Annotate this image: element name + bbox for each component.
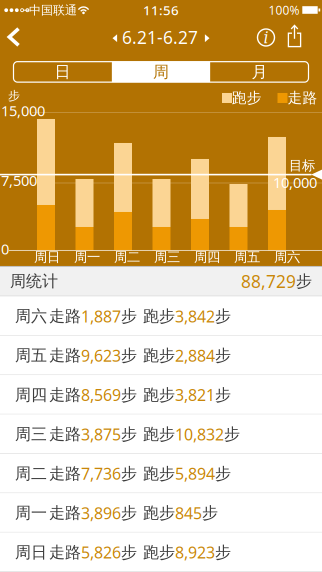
staticText: 走路: [49, 464, 81, 483]
staticText: 跑步: [232, 89, 262, 107]
button[interactable]: 周三: [0, 415, 322, 454]
staticText: 5,894: [175, 463, 215, 484]
button[interactable]: 周: [112, 62, 210, 82]
staticText: 步: [296, 271, 312, 291]
staticText: 走路: [49, 424, 81, 444]
button[interactable]: 返回: [5, 26, 21, 48]
button[interactable]: 月: [211, 62, 308, 82]
staticText: 3,896: [81, 502, 121, 523]
staticText: 3,821: [175, 384, 215, 405]
staticText: 周统计: [10, 271, 58, 291]
staticText: 周六: [274, 249, 300, 265]
staticText: 周五: [15, 346, 47, 365]
staticText: 8,923: [175, 542, 215, 563]
staticText: 8,569: [81, 384, 121, 405]
staticText: 周二: [15, 464, 47, 483]
staticText: 跑步: [143, 464, 175, 483]
staticText: 目标: [289, 157, 315, 174]
staticText: 11:56: [143, 1, 179, 19]
button[interactable]: 周二: [0, 454, 322, 493]
button[interactable]: 下一周: [205, 34, 210, 42]
staticText: i: [263, 28, 268, 47]
staticText: 2,884: [175, 345, 215, 366]
staticText: 7,736: [81, 463, 121, 484]
staticText: 跑步: [143, 424, 175, 444]
staticText: 步: [121, 385, 137, 405]
button[interactable]: 周日: [0, 533, 322, 572]
staticText: 走路: [49, 503, 81, 523]
staticText: 周三: [15, 424, 47, 444]
staticText: 步: [121, 503, 137, 523]
staticText: 周日: [15, 542, 47, 562]
staticText: 跑步: [143, 542, 175, 562]
staticText: 周二: [114, 249, 140, 265]
staticText: 走路: [49, 306, 81, 326]
staticText: 跑步: [143, 346, 175, 365]
staticText: 步: [215, 385, 231, 405]
staticText: 步: [215, 346, 231, 365]
staticText: 周五: [234, 249, 260, 265]
staticText: 中国联通: [29, 3, 77, 17]
staticText: 日: [55, 62, 71, 82]
button[interactable]: 周五: [0, 336, 322, 375]
staticText: 9,623: [81, 345, 121, 366]
staticText: 5,826: [81, 542, 121, 563]
staticText: 周六: [15, 306, 47, 326]
staticText: 1,887: [81, 305, 121, 327]
button[interactable]: 日: [14, 62, 111, 82]
staticText: 步: [121, 424, 137, 444]
staticText: 周: [153, 62, 169, 82]
staticText: 100%: [268, 2, 299, 18]
staticText: 周四: [15, 385, 47, 405]
staticText: 10,832: [175, 424, 224, 445]
staticText: 周一: [74, 249, 100, 265]
staticText: 走路: [287, 89, 317, 107]
button[interactable]: 信息: [255, 27, 276, 48]
staticText: 0: [1, 239, 9, 259]
staticText: 走路: [49, 542, 81, 562]
staticText: 周一: [15, 503, 47, 523]
staticText: 步: [215, 464, 231, 483]
button[interactable]: 周一: [0, 493, 322, 533]
staticText: 周四: [194, 249, 220, 265]
staticText: 10,000: [273, 173, 317, 192]
button[interactable]: 分享: [0, 0, 322, 266]
staticText: 7,500: [1, 171, 37, 190]
staticText: 步: [121, 306, 137, 326]
button[interactable]: 周六: [0, 296, 322, 336]
staticText: 跑步: [143, 503, 175, 523]
staticText: 3,875: [81, 424, 121, 445]
staticText: 845: [175, 502, 202, 523]
staticText: 88,729: [241, 270, 296, 293]
staticText: 跑步: [143, 385, 175, 405]
staticText: 步: [215, 306, 231, 326]
staticText: 周日: [34, 249, 60, 265]
staticText: 15,000: [1, 101, 45, 120]
staticText: 步: [224, 424, 240, 444]
button[interactable]: 周四: [0, 375, 322, 415]
staticText: 走路: [49, 385, 81, 405]
staticText: 跑步: [143, 306, 175, 326]
staticText: 6.21-6.27: [122, 26, 198, 49]
staticText: 步: [121, 542, 137, 562]
staticText: 步: [121, 346, 137, 365]
staticText: 3,842: [175, 305, 215, 327]
button[interactable]: 上一周: [112, 34, 117, 42]
staticText: 步: [202, 503, 218, 523]
staticText: 步: [121, 464, 137, 483]
staticText: 周三: [154, 249, 180, 265]
staticText: 步: [215, 542, 231, 562]
staticText: 走路: [49, 346, 81, 365]
staticText: 月: [251, 62, 267, 82]
staticText: 步: [8, 88, 20, 103]
